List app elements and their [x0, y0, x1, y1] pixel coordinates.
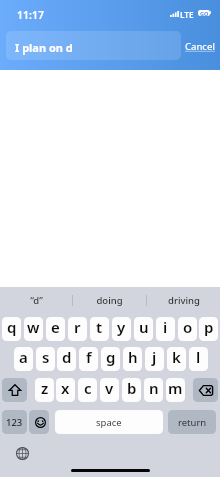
button[interactable]: h [123, 347, 142, 371]
button[interactable]: f [79, 347, 98, 371]
staticText: doing [96, 294, 123, 307]
button[interactable]: j [145, 347, 164, 371]
button[interactable]: r [68, 317, 87, 341]
button[interactable]: c [78, 378, 97, 402]
staticText: space [96, 416, 122, 429]
button[interactable]: d [57, 347, 76, 371]
button[interactable]: s [36, 347, 55, 371]
staticText: I plan on d [15, 40, 73, 55]
staticText: p [204, 317, 214, 337]
staticText: s [42, 347, 50, 367]
button[interactable]: 123 [2, 410, 27, 434]
button[interactable]: u [134, 317, 153, 341]
staticText: c [84, 378, 92, 398]
staticText: k [172, 347, 181, 367]
staticText: l [196, 347, 201, 367]
staticText: u [139, 317, 149, 337]
staticText: z [41, 378, 49, 398]
button[interactable]: a [14, 347, 33, 371]
button[interactable]: e [46, 317, 65, 341]
staticText: m [168, 378, 183, 398]
staticText: LTE [180, 9, 194, 20]
button[interactable]: v [100, 378, 119, 402]
button[interactable]: I plan on d [6, 31, 181, 60]
button[interactable]: space [55, 410, 163, 434]
button[interactable]: m [166, 378, 185, 402]
button[interactable]: l [189, 347, 208, 371]
staticText: return [178, 416, 207, 429]
staticText: i [163, 317, 168, 337]
button[interactable]: z [35, 378, 54, 402]
staticText: f [86, 347, 92, 367]
button[interactable]: n [144, 378, 163, 402]
button[interactable]: y [112, 317, 131, 341]
staticText: r [74, 317, 81, 337]
button[interactable]: t [90, 317, 109, 341]
staticText: v [105, 378, 114, 398]
staticText: Cancel [185, 40, 215, 53]
staticText: j [152, 347, 157, 367]
button[interactable]: “d” [0, 289, 72, 311]
button[interactable]: Cancel [182, 31, 218, 60]
staticText: h [128, 347, 138, 367]
staticText: y [117, 317, 126, 337]
button[interactable]: o [178, 317, 197, 341]
button[interactable]: return [168, 410, 216, 434]
staticText: n [149, 378, 159, 398]
staticText: b [127, 378, 137, 398]
button[interactable]: x [56, 378, 75, 402]
staticText: d [62, 347, 72, 367]
staticText: driving [168, 294, 200, 307]
button[interactable]: Change keyboard [16, 447, 29, 460]
button[interactable]: i [156, 317, 175, 341]
staticText: a [19, 347, 28, 367]
button[interactable]: p [199, 317, 218, 341]
button[interactable]: Shift [2, 378, 27, 402]
button[interactable]: w [24, 317, 43, 341]
button[interactable]: driving [147, 289, 220, 311]
button[interactable]: Backspace [193, 378, 218, 402]
staticText: e [51, 317, 60, 337]
staticText: w [27, 317, 40, 337]
button[interactable]: doing [73, 289, 146, 311]
button[interactable]: b [122, 378, 141, 402]
other: Shift [9, 384, 21, 396]
button[interactable]: q [2, 317, 21, 341]
staticText: 11:17 [17, 8, 44, 22]
staticText: 123 [6, 416, 23, 429]
staticText: q [7, 317, 17, 337]
staticText: “d” [30, 294, 43, 307]
staticText: t [96, 317, 103, 337]
staticText: o [183, 317, 193, 337]
button[interactable]: Emoji [29, 410, 49, 434]
button[interactable]: g [101, 347, 120, 371]
button[interactable]: k [167, 347, 186, 371]
staticText: x [61, 378, 70, 398]
staticText: g [106, 347, 116, 367]
staticText: GO [200, 10, 209, 16]
